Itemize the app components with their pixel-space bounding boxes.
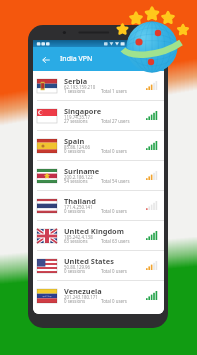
staticText: Thailand <box>64 196 96 206</box>
staticText: Total 0 users <box>101 298 127 304</box>
staticText: Total 54 users <box>101 178 130 184</box>
staticText: 50.80.129.96 <box>64 264 91 270</box>
staticText: Singapore <box>64 106 102 116</box>
staticText: 27 sessions <box>64 118 88 124</box>
staticText: Venezuela <box>64 286 102 296</box>
staticText: Total 0 users <box>101 268 127 274</box>
staticText: United Kingdom <box>64 226 124 236</box>
button[interactable]: Spain <box>33 131 164 160</box>
staticText: 63 sessions <box>64 238 88 244</box>
staticText: Suriname <box>64 166 100 176</box>
staticText: 0 sessions <box>64 298 86 304</box>
staticText: 201.243.180.171 <box>64 294 98 300</box>
staticText: Total 0 users <box>101 148 127 154</box>
staticText: 119.74.35.17 <box>64 114 91 120</box>
staticText: 85.86.124.66 <box>64 144 91 150</box>
staticText: 1 sessions <box>64 88 86 94</box>
button[interactable]: Singapore <box>33 101 164 130</box>
staticText: 0 sessions <box>64 208 86 214</box>
staticText: Total 27 users <box>101 118 130 124</box>
staticText: Total 0 users <box>101 208 127 214</box>
staticText: Total 63 users <box>101 238 130 244</box>
button[interactable]: Back <box>39 53 52 66</box>
staticText: 0 sessions <box>64 148 86 154</box>
staticText: Serbia <box>64 76 88 86</box>
staticText: 200.2.186.122 <box>64 174 93 180</box>
button[interactable]: Serbia <box>33 71 164 100</box>
other: India VPN globe logo <box>0 0 197 355</box>
button[interactable]: Suriname <box>33 161 164 190</box>
button[interactable]: Thailand <box>33 191 164 220</box>
button[interactable]: Venezuela <box>33 281 164 310</box>
staticText: Total 1 users <box>101 88 127 94</box>
button[interactable]: United Kingdom <box>33 221 164 250</box>
staticText: 54 sessions <box>64 178 88 184</box>
staticText: India VPN <box>60 54 93 64</box>
staticText: 171.4.250.141 <box>64 204 93 210</box>
staticText: Spain <box>64 136 85 146</box>
staticText: 0 sessions <box>64 268 86 274</box>
button[interactable]: United States <box>33 251 164 280</box>
staticText: 185.242.4.138 <box>64 234 93 240</box>
staticText: United States <box>64 256 114 266</box>
staticText: 62.193.159.210 <box>64 84 96 90</box>
